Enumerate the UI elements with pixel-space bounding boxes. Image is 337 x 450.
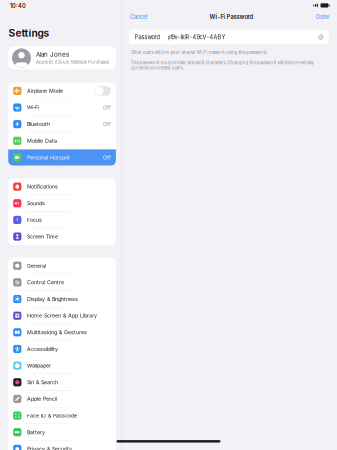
staticText: Mobile Data [27, 138, 57, 144]
staticText: Focus [27, 217, 42, 223]
button[interactable]: Display & Brightness [8, 291, 116, 307]
button[interactable]: Clear text [318, 34, 324, 40]
staticText: Off [103, 104, 111, 111]
staticText: Notifications [27, 183, 58, 190]
button[interactable]: Alan Jones [0, 47, 121, 69]
staticText: Screen Time [27, 233, 58, 240]
button[interactable]: Notifications [8, 179, 116, 195]
staticText: Cancel [130, 13, 147, 20]
staticText: Bluetooth [27, 121, 50, 127]
staticText: Alan Jones [36, 51, 69, 58]
staticText: Privacy & Security [27, 446, 72, 450]
staticText: Siri & Search [27, 379, 58, 385]
button[interactable]: Accessibility [8, 341, 116, 357]
button[interactable]: General [8, 258, 116, 274]
button[interactable]: Multitasking & Gestures [8, 324, 116, 340]
staticText: Home Screen & App Library [27, 312, 97, 319]
button[interactable]: Privacy & Security [8, 441, 116, 450]
staticText: Off [103, 154, 111, 161]
button[interactable]: Done [313, 11, 329, 22]
button[interactable]: Wallpaper [8, 357, 116, 374]
staticText: Control Centre [27, 279, 64, 286]
staticText: General [27, 262, 46, 269]
staticText: Personal Hotspot [27, 154, 70, 161]
button[interactable]: Siri & Search [8, 374, 116, 390]
staticText: Airplane Mode [27, 88, 63, 94]
staticText: Sounds [27, 200, 45, 206]
staticText: Multitasking & Gestures [27, 329, 87, 336]
button[interactable]: Face ID & Passcode [8, 407, 116, 424]
button[interactable]: Screen Time [8, 228, 116, 245]
staticText: Display & Brightness [27, 296, 78, 302]
button[interactable]: Bluetooth [8, 116, 116, 132]
button[interactable]: Battery [8, 424, 116, 440]
staticText: Password [135, 34, 160, 40]
staticText: Wi-Fi Password [209, 13, 253, 20]
staticText: The password must contain at least 8 cha… [131, 60, 314, 70]
staticText: Other users will join your shared Wi-Fi … [131, 50, 268, 55]
staticText: Done [316, 13, 329, 20]
button[interactable]: Home Screen & App Library [8, 308, 116, 324]
staticText: Off [103, 121, 111, 127]
button[interactable]: Personal Hotspot [8, 149, 116, 165]
staticText: Apple ID, iCloud, Media & Purchases [36, 60, 109, 65]
staticText: yl9v-lkiR-49cV-4ABY [168, 34, 226, 40]
staticText: Battery [27, 429, 45, 435]
staticText: Settings [8, 27, 49, 39]
staticText: Apple Pencil [27, 396, 57, 402]
button[interactable]: Apple Pencil [8, 391, 116, 407]
button[interactable]: Wi-Fi [8, 99, 116, 115]
button[interactable]: Cancel [130, 11, 150, 22]
button[interactable]: Focus [8, 212, 116, 228]
button[interactable]: Mobile Data [8, 133, 116, 149]
staticText: Wi-Fi [27, 104, 39, 111]
button[interactable]: Airplane Mode [8, 83, 116, 99]
staticText: Accessibility [27, 346, 58, 352]
staticText: 10:40 [10, 3, 26, 9]
button[interactable]: Control Centre [8, 274, 116, 290]
staticText: Wallpaper [27, 362, 51, 369]
button[interactable]: Sounds [8, 195, 116, 211]
staticText: Face ID & Passcode [27, 412, 77, 419]
